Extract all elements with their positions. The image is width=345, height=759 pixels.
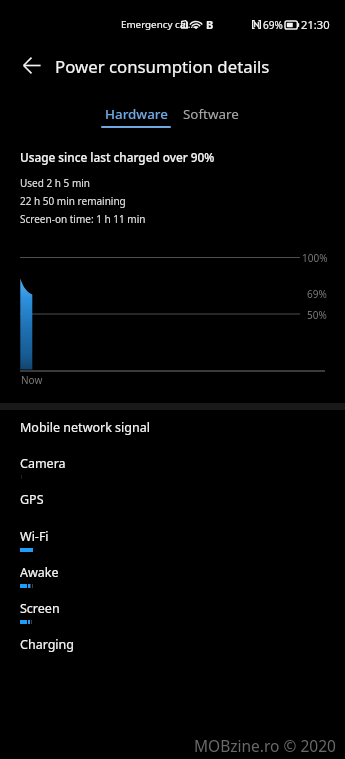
staticText: Power consumption details xyxy=(55,55,270,78)
button[interactable]: GPS xyxy=(0,484,345,520)
staticText: GPS xyxy=(20,491,44,508)
staticText: MOBzine.ro © 2020 xyxy=(194,735,336,756)
staticText: Usage since last charged over 90% xyxy=(20,149,215,165)
button[interactable]: Camera xyxy=(0,448,345,484)
staticText: 69% xyxy=(263,18,283,32)
staticText: Emergency cal… xyxy=(121,18,196,31)
staticText: Awake xyxy=(20,564,59,581)
button[interactable]: Screen xyxy=(0,593,345,629)
button[interactable]: Back xyxy=(10,44,52,86)
staticText: 69% xyxy=(307,287,327,301)
staticText: Now xyxy=(21,373,43,387)
button[interactable]: Software xyxy=(176,96,246,134)
button[interactable]: Hardware xyxy=(95,96,177,134)
staticText: Software xyxy=(183,105,239,123)
staticText: 50% xyxy=(307,308,327,322)
staticText: Mobile network signal xyxy=(20,419,150,436)
button[interactable]: Charging xyxy=(0,629,345,665)
staticText: Camera xyxy=(20,455,66,472)
staticText: Used 2 h 5 min xyxy=(20,176,91,190)
staticText: 21:30 xyxy=(301,17,330,32)
staticText: Screen-on time: 1 h 11 min xyxy=(20,212,146,226)
staticText: 22 h 50 min remaining xyxy=(20,194,126,208)
staticText: Hardware xyxy=(105,105,168,123)
button[interactable]: Mobile network signal xyxy=(0,412,345,448)
button[interactable]: Wi-Fi xyxy=(0,521,345,557)
staticText: Charging xyxy=(20,636,75,653)
button[interactable]: Awake xyxy=(0,557,345,593)
staticText: B xyxy=(206,17,214,32)
staticText: Screen xyxy=(20,600,60,617)
staticText: 100% xyxy=(302,251,328,265)
staticText: Wi-Fi xyxy=(20,528,49,545)
